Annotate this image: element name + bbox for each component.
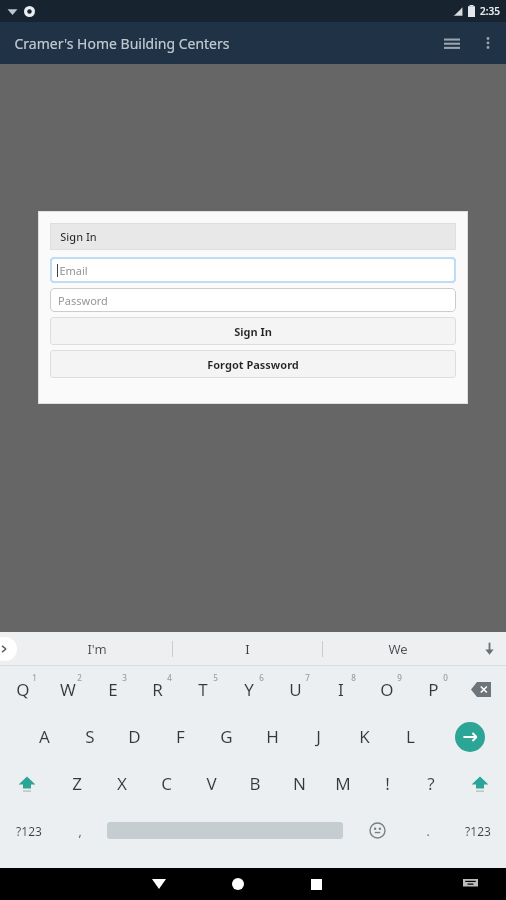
button[interactable]: H [249, 713, 295, 760]
button[interactable]: D [112, 713, 157, 760]
button[interactable]: Sign In [50, 317, 456, 345]
staticText: Sign In [60, 229, 97, 244]
staticText: Z [72, 772, 82, 795]
button[interactable]: Home [198, 868, 277, 900]
button[interactable]: N [277, 760, 321, 807]
staticText: O [380, 678, 394, 701]
button[interactable]: T [180, 666, 226, 713]
button[interactable]: Y [226, 666, 272, 713]
button[interactable]: Shift [0, 760, 54, 807]
button[interactable]: ? [409, 760, 453, 807]
staticText: R [152, 678, 163, 701]
staticText: . [426, 823, 430, 839]
button[interactable]: C [144, 760, 189, 807]
staticText: I [338, 678, 344, 701]
staticText: Q [16, 678, 30, 701]
staticText: ?123 [16, 823, 42, 839]
staticText: 7 [305, 672, 310, 683]
staticText: 2:35 [480, 4, 500, 18]
button[interactable]: E [90, 666, 135, 713]
button[interactable]: I'm [22, 632, 172, 665]
button[interactable]: ?123 [0, 807, 58, 854]
staticText: 5 [213, 672, 218, 683]
button[interactable]: B [233, 760, 277, 807]
staticText: Forgot Password [207, 357, 299, 372]
staticText: L [406, 725, 415, 748]
button[interactable]: A [22, 713, 67, 760]
staticText: B [249, 772, 261, 795]
staticText: W [60, 678, 76, 701]
button[interactable]: G [203, 713, 249, 760]
button[interactable]: Expand suggestions [0, 637, 17, 661]
button[interactable]: Z [54, 760, 99, 807]
staticText: M [335, 772, 351, 795]
button[interactable]: L [387, 713, 433, 760]
staticText: 6 [259, 672, 264, 683]
staticText: 0 [443, 672, 448, 683]
staticText: We [388, 640, 408, 658]
staticText: T [198, 678, 208, 701]
button[interactable]: O [364, 666, 410, 713]
button[interactable]: Emoji [349, 807, 406, 854]
button[interactable]: U [272, 666, 318, 713]
staticText: S [85, 725, 95, 748]
staticText: Cramer's Home Building Centers [14, 34, 230, 53]
button[interactable]: P [410, 666, 456, 713]
staticText: J [316, 725, 321, 748]
button[interactable]: F [157, 713, 203, 760]
button[interactable]: X [99, 760, 144, 807]
staticText: D [128, 725, 141, 748]
staticText: I [245, 640, 250, 658]
staticText: V [206, 772, 217, 795]
button[interactable]: Hide keyboard [435, 868, 506, 900]
staticText: A [39, 725, 50, 748]
button[interactable]: Forgot Password [50, 350, 456, 378]
staticText: U [289, 678, 302, 701]
staticText: Y [244, 678, 254, 701]
staticText: ?123 [465, 823, 491, 839]
button[interactable]: M [321, 760, 365, 807]
button[interactable]: I [173, 632, 322, 665]
button[interactable]: S [67, 713, 112, 760]
button[interactable]: Password [50, 288, 456, 312]
button[interactable]: W [45, 666, 90, 713]
button[interactable]: . [406, 807, 449, 854]
staticText: 8 [351, 672, 356, 683]
button[interactable]: Backspace [456, 666, 506, 713]
staticText: G [220, 725, 233, 748]
staticText: Email [59, 263, 88, 278]
staticText: 4 [167, 672, 172, 683]
staticText: E [108, 678, 118, 701]
button[interactable]: I [318, 666, 364, 713]
button[interactable]: We [323, 632, 472, 665]
button[interactable]: Space [101, 807, 349, 854]
staticText: H [266, 725, 279, 748]
staticText: 3 [122, 672, 127, 683]
button[interactable]: V [189, 760, 233, 807]
staticText: 1 [32, 672, 37, 683]
button[interactable]: Voice input [472, 632, 506, 665]
staticText: X [117, 772, 127, 795]
staticText: P [428, 678, 439, 701]
button[interactable]: R [135, 666, 180, 713]
staticText: F [176, 725, 185, 748]
button[interactable]: Back [119, 868, 198, 900]
staticText: Sign In [234, 324, 272, 339]
button[interactable]: Enter [433, 713, 506, 760]
button[interactable]: More options [470, 25, 506, 61]
button[interactable]: ! [365, 760, 409, 807]
staticText: I'm [87, 640, 107, 658]
staticText: 2 [77, 672, 82, 683]
button[interactable]: Menu [434, 25, 470, 61]
button[interactable]: Q [0, 666, 45, 713]
staticText: N [293, 772, 306, 795]
staticText: Password [58, 293, 108, 308]
button[interactable]: ?123 [449, 807, 506, 854]
button[interactable]: , [58, 807, 101, 854]
button[interactable]: Recent apps [277, 868, 356, 900]
staticText: C [161, 772, 172, 795]
button[interactable]: Shift [453, 760, 506, 807]
button[interactable]: Email [50, 257, 456, 283]
button[interactable]: J [295, 713, 341, 760]
button[interactable]: K [341, 713, 387, 760]
